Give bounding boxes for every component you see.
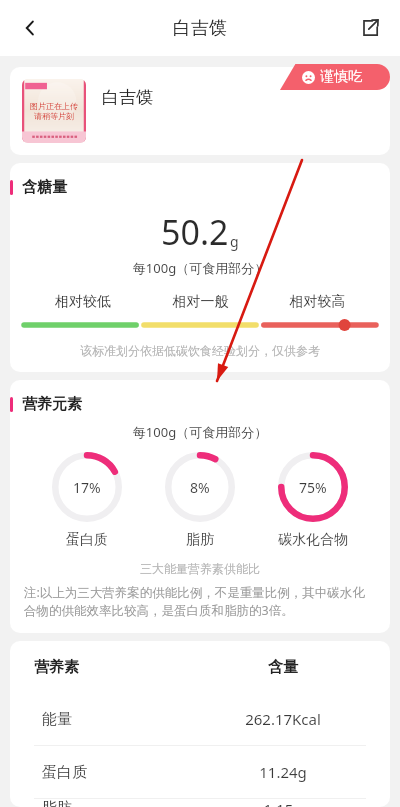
staticText: 请稍等片刻 xyxy=(34,111,74,121)
staticText: 注:以上为三大营养案的供能比例，不是重量比例，其中碳水化合物的供能效率比较高，是… xyxy=(24,584,376,619)
staticText: 17% xyxy=(73,478,101,497)
staticText: 营养素 xyxy=(34,658,200,677)
staticText: 75% xyxy=(299,478,327,497)
staticText: 蛋白质 xyxy=(66,531,108,549)
staticText: 脂肪 xyxy=(186,531,214,549)
staticText: 图片正在上传 xyxy=(30,101,78,111)
staticText: 1.15g xyxy=(200,799,366,807)
staticText: 8% xyxy=(190,478,210,497)
staticText: 能量 xyxy=(42,710,200,729)
staticText: 谨慎吃 xyxy=(320,68,362,86)
button[interactable]: 谨慎吃 xyxy=(280,64,390,90)
staticText: 每100g（可食用部分） xyxy=(10,423,390,441)
staticText: 含糖量 xyxy=(22,178,67,197)
staticText: 白吉馍 xyxy=(173,17,227,40)
staticText: 脂肪 xyxy=(42,799,200,807)
staticText: 相对较低 xyxy=(24,293,142,311)
staticText: 相对一般 xyxy=(142,293,259,311)
staticText: 蛋白质 xyxy=(42,763,200,782)
staticText: 营养元素 xyxy=(22,395,82,414)
staticText: g xyxy=(230,232,239,251)
button[interactable]: 能量 xyxy=(34,693,366,745)
staticText: 相对较高 xyxy=(259,293,376,311)
staticText: 50.2 xyxy=(161,209,229,255)
button[interactable]: 蛋白质 xyxy=(34,746,366,798)
button[interactable]: Back xyxy=(8,6,52,50)
staticText: 262.17Kcal xyxy=(200,709,366,729)
button[interactable]: 图片正在上传 xyxy=(10,67,390,155)
staticText: 碳水化合物 xyxy=(278,531,348,549)
staticText: 三大能量营养素供能比 xyxy=(10,561,390,576)
staticText: 含量 xyxy=(200,658,366,677)
staticText: 白吉馍 xyxy=(102,87,153,108)
staticText: 11.24g xyxy=(200,762,366,782)
button[interactable]: Share xyxy=(348,6,392,50)
staticText: 该标准划分依据低碳饮食经验划分，仅供参考 xyxy=(10,343,390,358)
staticText: 每100g（可食用部分） xyxy=(10,259,390,277)
button[interactable]: 脂肪 xyxy=(34,799,366,807)
